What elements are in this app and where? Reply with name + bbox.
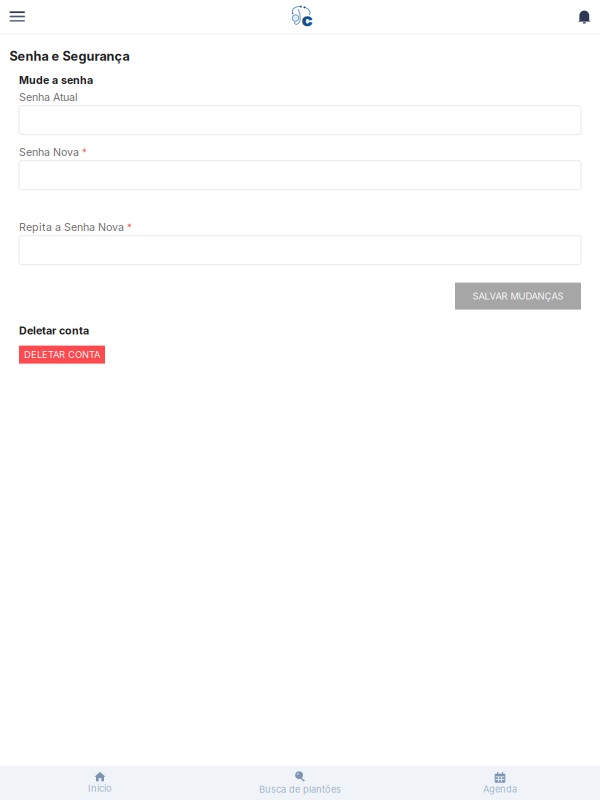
staticText: Repita a Senha Nova [19, 221, 124, 233]
button[interactable]: Agenda [400, 766, 600, 800]
staticText: * [127, 221, 132, 233]
staticText: Senha Atual [19, 91, 78, 103]
staticText: Mude a senha [19, 74, 93, 86]
staticText: Deletar conta [19, 324, 89, 337]
staticText: Agenda [483, 783, 517, 795]
button[interactable]: DELETAR CONTA [19, 346, 105, 364]
staticText: Início [88, 783, 112, 794]
button[interactable]: SALVAR MUDANÇAS [455, 283, 581, 310]
staticText: c [301, 8, 312, 31]
staticText: Senha e Segurança [9, 49, 129, 64]
staticText: Senha Nova [19, 146, 79, 158]
button[interactable]: Notificações [560, 0, 600, 33]
staticText: Busca de plantões [259, 784, 341, 795]
button[interactable]: Início [0, 766, 200, 800]
staticText: DELETAR CONTA [24, 349, 100, 360]
button[interactable]: Busca de plantões [200, 766, 400, 800]
staticText: * [82, 146, 87, 158]
staticText: SALVAR MUDANÇAS [472, 290, 563, 302]
button[interactable]: Menu [0, 0, 40, 33]
